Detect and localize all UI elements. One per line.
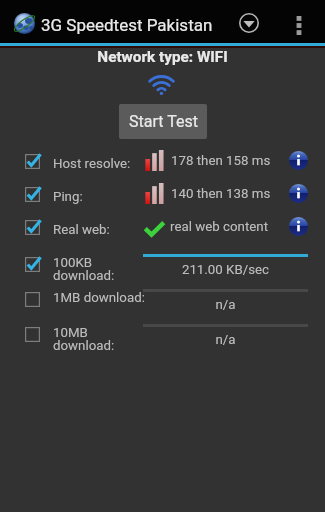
staticText: 3G Speedtest Pakistan xyxy=(41,15,213,35)
button[interactable] xyxy=(0,212,325,242)
staticText: Real web: xyxy=(53,222,110,238)
button[interactable]: More options xyxy=(284,8,314,42)
staticText: n/a xyxy=(143,297,308,313)
staticText: 140 then 138 ms xyxy=(171,186,271,202)
staticText: n/a xyxy=(143,332,308,348)
staticText: 211.00 KB/sec xyxy=(143,262,308,278)
button[interactable] xyxy=(0,319,325,352)
button[interactable]: Show more xyxy=(232,6,266,40)
staticText: 100KB download: xyxy=(53,255,115,283)
staticText: Network type: WIFI xyxy=(0,48,325,66)
staticText: 178 then 158 ms xyxy=(171,153,271,169)
staticText: 1MB download: xyxy=(53,290,145,306)
staticText: Start Test xyxy=(129,112,198,131)
staticText: Ping: xyxy=(53,189,83,205)
staticText: Host resolve: xyxy=(53,156,131,172)
button[interactable] xyxy=(0,179,325,209)
button[interactable]: Start Test xyxy=(119,104,207,139)
button[interactable] xyxy=(0,284,325,317)
button[interactable] xyxy=(0,146,325,176)
staticText: real web content xyxy=(170,219,268,235)
button[interactable] xyxy=(0,249,325,282)
staticText: 10MB download: xyxy=(53,325,115,353)
